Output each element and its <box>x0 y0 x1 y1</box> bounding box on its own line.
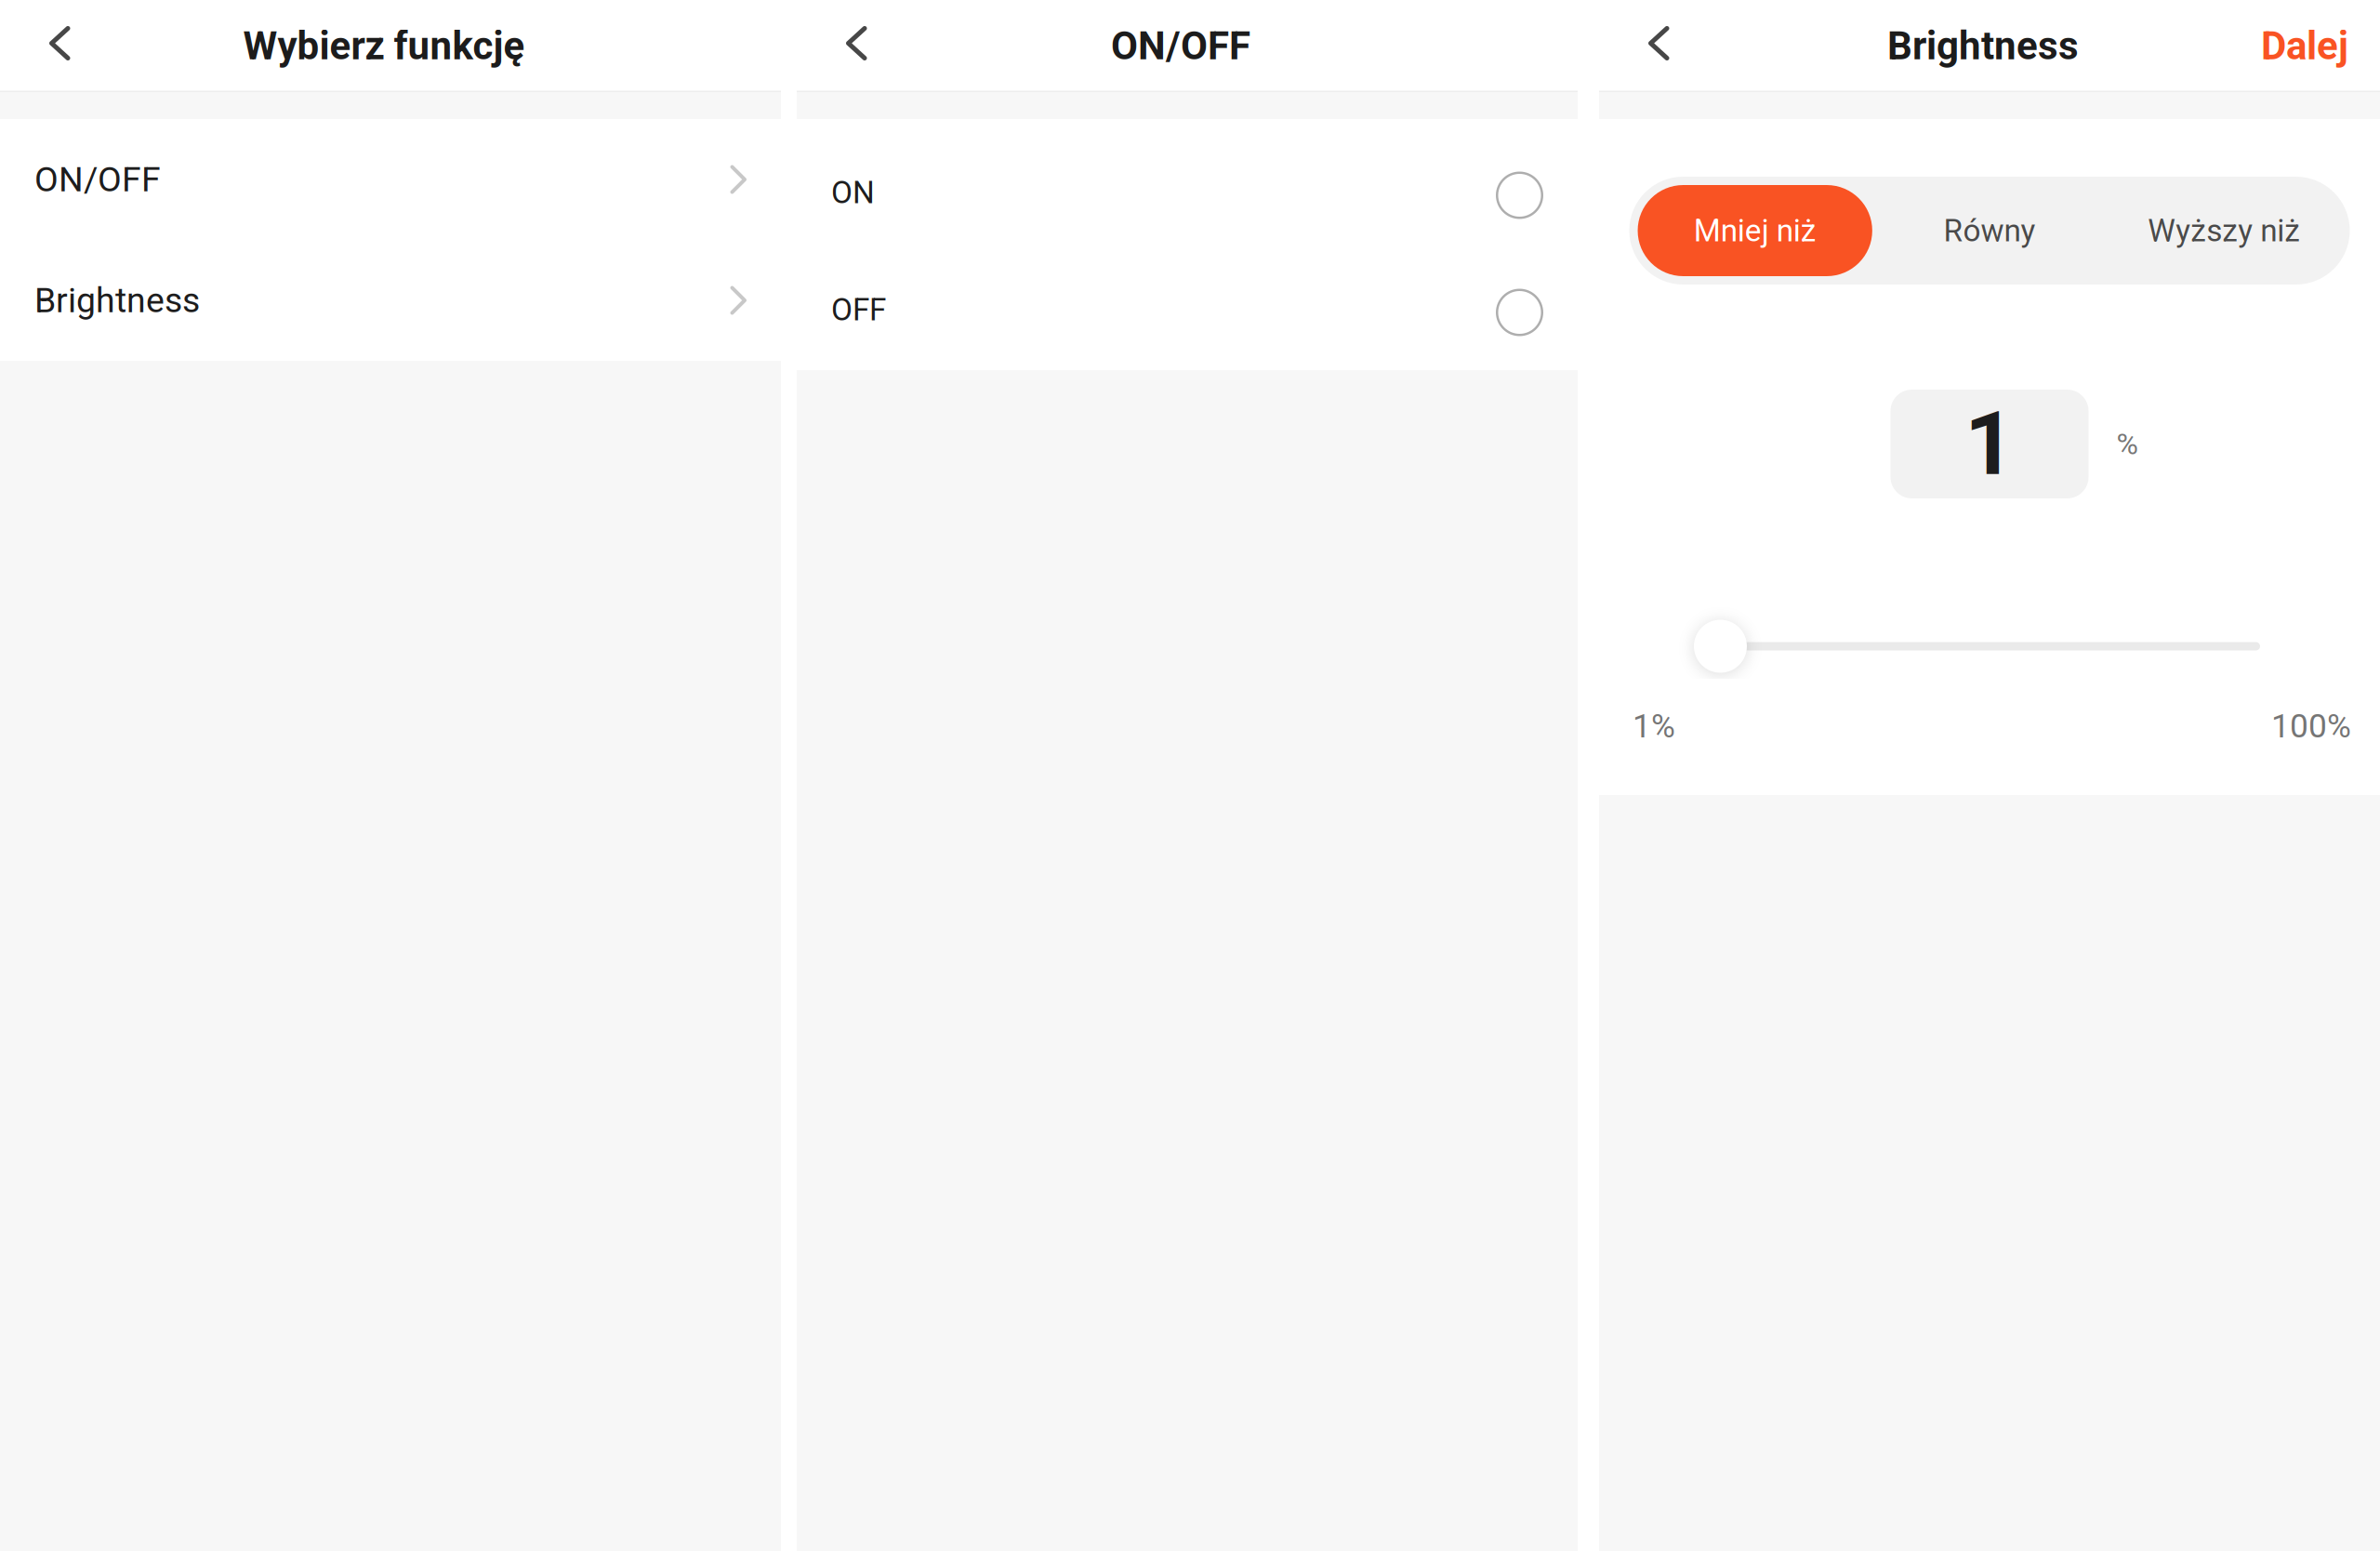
button[interactable]: ON <box>797 134 1578 251</box>
staticText: 1 <box>1964 392 2015 496</box>
button[interactable]: OFF <box>797 251 1578 368</box>
staticText: Brightness <box>1887 23 2079 69</box>
button[interactable]: Równy <box>1872 185 2107 276</box>
staticText: Brightness <box>34 280 200 321</box>
button[interactable]: Back <box>0 0 119 92</box>
staticText: 1% <box>1633 707 1675 745</box>
staticText: Wyższy niż <box>2148 212 2300 249</box>
button[interactable]: Wyższy niż <box>2107 185 2341 276</box>
button[interactable]: ON/OFF <box>0 119 781 240</box>
staticText: Wybierz funkcję <box>243 23 525 69</box>
button[interactable]: Brightness <box>0 240 781 361</box>
staticText: ON/OFF <box>34 159 161 200</box>
staticText: Dalej <box>2261 23 2348 69</box>
button[interactable]: Mniej niż <box>1638 185 1872 276</box>
button[interactable]: Back <box>1599 0 1718 92</box>
button[interactable]: Brightness level <box>1599 614 2380 679</box>
button[interactable]: 1 <box>1891 390 2089 498</box>
button[interactable]: Dalej <box>2261 0 2380 92</box>
staticText: Równy <box>1944 212 2036 249</box>
staticText: ON <box>831 174 875 211</box>
staticText: ON/OFF <box>1111 23 1250 69</box>
button[interactable]: Back <box>797 0 916 92</box>
staticText: 100% <box>2271 707 2351 745</box>
staticText: OFF <box>831 292 886 328</box>
staticText: % <box>2116 427 2138 461</box>
staticText: Mniej niż <box>1694 212 1816 249</box>
